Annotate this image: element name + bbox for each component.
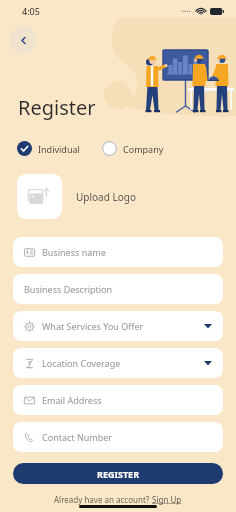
staticText: Company [123, 143, 164, 155]
staticText: Location Coverage [42, 357, 121, 369]
staticText: What Services You Offer [42, 320, 144, 332]
staticText: 4:05 [22, 5, 40, 17]
button[interactable]: Sign Up [152, 494, 182, 505]
staticText: Business name [42, 246, 106, 258]
button[interactable]: Business name [13, 237, 223, 267]
staticText: REGISTER [97, 468, 140, 480]
staticText: Already have an account? [54, 494, 152, 505]
button[interactable]: Upload Logo [17, 174, 62, 219]
button[interactable]: Back [9, 26, 37, 54]
button[interactable]: Contact Number [13, 422, 223, 452]
button[interactable]: Location Coverage [13, 348, 223, 378]
staticText: Sign Up [152, 494, 182, 505]
button[interactable]: Business Description [13, 274, 223, 304]
staticText: Business Description [24, 283, 113, 295]
button[interactable]: Company [102, 139, 164, 158]
staticText: Email Address [42, 394, 102, 406]
staticText: Upload Logo [76, 190, 136, 204]
staticText: Individual [38, 143, 80, 155]
staticText: Contact Number [42, 431, 113, 443]
button[interactable]: What Services You Offer [13, 311, 223, 341]
button[interactable]: REGISTER [13, 463, 223, 484]
button[interactable]: Email Address [13, 385, 223, 415]
button[interactable]: Individual [17, 139, 80, 158]
staticText: Register [18, 94, 96, 121]
